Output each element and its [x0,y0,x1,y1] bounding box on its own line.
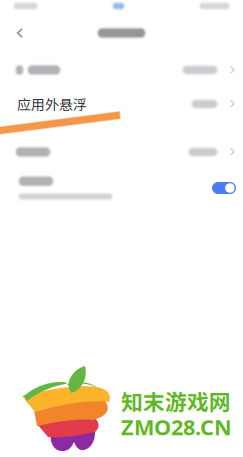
button[interactable]: 返回 [0,24,243,42]
button[interactable]: 应用外悬浮 [0,86,243,122]
staticText: 应用外悬浮 [17,94,87,114]
button[interactable]: 开关 [0,170,243,206]
staticText: 知末游戏网 [121,385,231,416]
button[interactable]: 设置项 [0,134,243,170]
staticText: ZMO28.CN [121,412,232,442]
button[interactable]: 设置项 [0,52,243,88]
